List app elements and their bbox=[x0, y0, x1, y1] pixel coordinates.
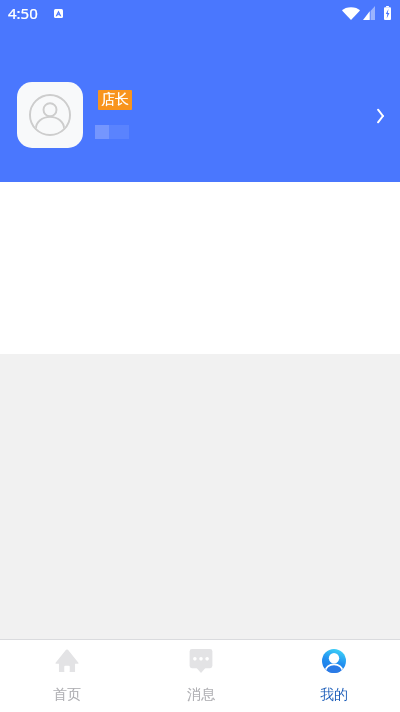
staticText: 4:50 bbox=[8, 3, 38, 23]
staticText: 我的 bbox=[320, 686, 348, 704]
button[interactable]: 店长 bbox=[0, 82, 400, 148]
button[interactable]: Home bbox=[0, 640, 134, 712]
button[interactable]: Mine bbox=[267, 640, 400, 712]
staticText: 首页 bbox=[53, 686, 81, 704]
staticText: 店长 bbox=[101, 91, 129, 109]
button[interactable]: Messages bbox=[134, 640, 267, 712]
staticText: 消息 bbox=[187, 686, 215, 704]
button[interactable]: Open profile bbox=[366, 102, 394, 130]
